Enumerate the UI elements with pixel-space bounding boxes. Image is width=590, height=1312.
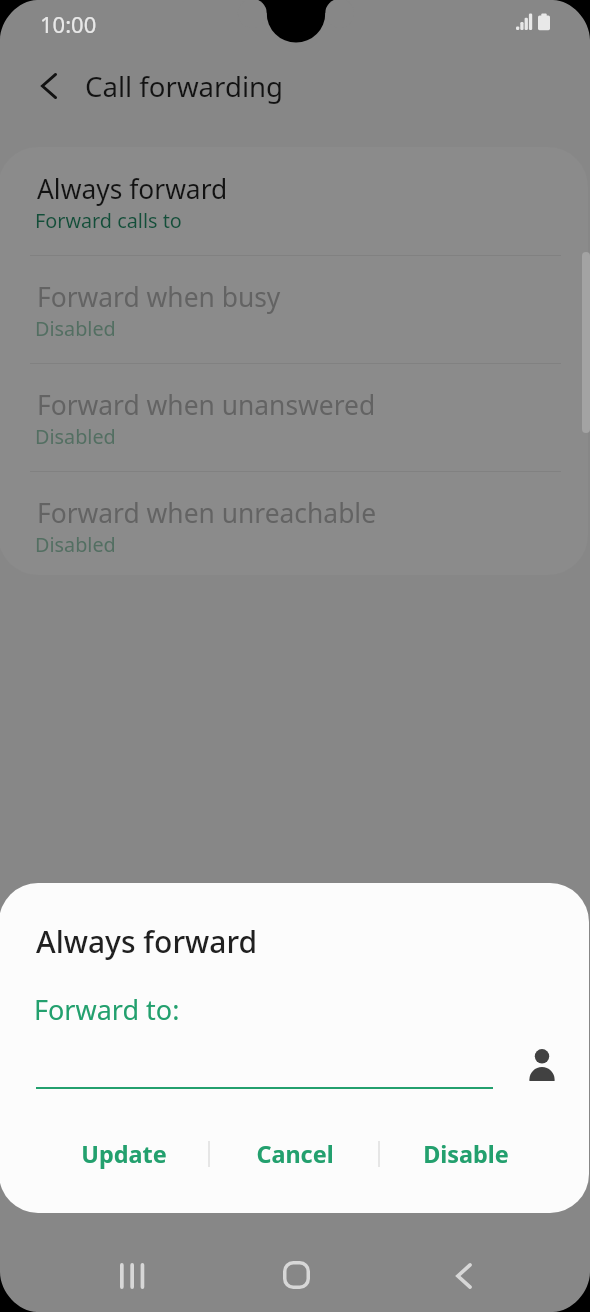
staticText: Cancel [256, 1138, 334, 1170]
button[interactable]: Always forward [0, 147, 588, 255]
staticText: Forward to: [34, 991, 180, 1028]
button[interactable]: Forward when unreachable [0, 472, 588, 575]
staticText: Disabled [35, 315, 116, 342]
staticText: Disabled [35, 531, 116, 558]
staticText: 10:00 [40, 9, 97, 39]
button[interactable]: Recent apps [50, 1238, 215, 1312]
staticText: Call forwarding [85, 67, 284, 105]
staticText: Forward when unreachable [37, 495, 377, 531]
button[interactable]: Back [381, 1238, 546, 1312]
staticText: Forward when busy [37, 279, 281, 315]
staticText: Always forward [36, 921, 258, 962]
button[interactable]: Home [214, 1237, 379, 1312]
button[interactable]: Cancel [209, 1128, 380, 1180]
staticText: Disable [423, 1138, 509, 1170]
button[interactable]: Update [38, 1128, 209, 1180]
button[interactable]: Disable [380, 1128, 551, 1180]
staticText: Forward when unanswered [37, 387, 376, 423]
staticText: Update [81, 1138, 167, 1170]
staticText: Always forward [37, 171, 228, 207]
staticText: Forward calls to [35, 207, 182, 234]
button[interactable]: Select contact [516, 1038, 568, 1090]
button[interactable]: Forward when unanswered [0, 364, 588, 471]
staticText: Disabled [35, 423, 116, 450]
button[interactable]: Forward when busy [0, 256, 588, 363]
button[interactable]: Navigate up [25, 62, 73, 110]
